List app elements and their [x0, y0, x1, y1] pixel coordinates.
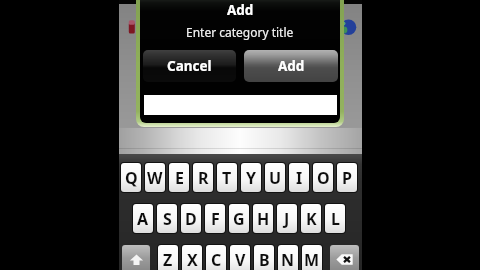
staticText: Add [227, 1, 254, 19]
staticText: O [317, 167, 330, 189]
staticText: R [198, 167, 209, 189]
staticText: Q [125, 167, 138, 189]
button[interactable]: O [312, 162, 334, 193]
button[interactable]: L [324, 203, 346, 234]
button[interactable]: K [300, 203, 322, 234]
staticText: F [211, 208, 220, 230]
button[interactable]: G [228, 203, 250, 234]
staticText: Cancel [167, 57, 212, 75]
staticText: Enter category title [186, 24, 294, 40]
button[interactable]: V [229, 244, 251, 270]
button[interactable]: M [301, 244, 323, 270]
staticText: T [222, 167, 232, 189]
staticText: D [185, 208, 197, 230]
button[interactable]: J [276, 203, 298, 234]
button[interactable]: Add [244, 50, 338, 82]
button[interactable]: Y [240, 162, 262, 193]
button[interactable]: I [288, 162, 310, 193]
staticText: I [296, 167, 303, 189]
staticText: P [342, 167, 352, 189]
button[interactable]: B [253, 244, 275, 270]
staticText: M [304, 249, 320, 270]
button[interactable]: W [144, 162, 166, 193]
button[interactable]: Z [157, 244, 179, 270]
button[interactable]: F [204, 203, 226, 234]
staticText: Add [278, 57, 305, 75]
button[interactable]: Q [120, 162, 142, 193]
button[interactable]: D [180, 203, 202, 234]
button[interactable]: Cancel [143, 50, 236, 82]
staticText: L [331, 208, 340, 230]
staticText: Z [163, 249, 173, 270]
staticText: G [233, 208, 245, 230]
staticText: U [269, 167, 282, 189]
staticText: N [281, 249, 295, 270]
button[interactable]: R [192, 162, 214, 193]
button[interactable]: Delete [330, 245, 359, 270]
button[interactable]: U [264, 162, 286, 193]
button[interactable]: A [132, 203, 154, 234]
staticText: J [284, 208, 290, 230]
button[interactable]: Shift [122, 245, 150, 270]
staticText: A [137, 208, 149, 230]
button[interactable]: X [181, 244, 203, 270]
button[interactable]: N [277, 244, 299, 270]
staticText: X [187, 249, 198, 270]
staticText: C [211, 249, 222, 270]
staticText: S [163, 208, 172, 230]
staticText: H [257, 208, 270, 230]
button[interactable]: P [336, 162, 358, 193]
button[interactable]: C [205, 244, 227, 270]
staticText: K [306, 208, 317, 230]
button[interactable]: E [168, 162, 190, 193]
staticText: V [235, 249, 246, 270]
button[interactable]: H [252, 203, 274, 234]
staticText: Y [246, 167, 257, 189]
button[interactable]: S [156, 203, 178, 234]
staticText: W [147, 167, 163, 189]
button[interactable]: T [216, 162, 238, 193]
staticText: B [259, 249, 270, 270]
staticText: E [175, 167, 184, 189]
